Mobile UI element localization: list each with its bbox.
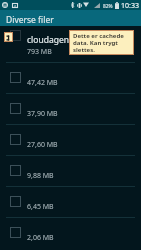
staticText: 793 MB [27, 47, 52, 57]
staticText: 37,90 MB [27, 109, 58, 119]
button[interactable]: Dette er cachede data. Kan trygt slettes… [70, 31, 133, 54]
staticText: 9,88 MB [27, 171, 54, 181]
staticText: 6,45 MB [27, 202, 54, 212]
button[interactable]: 2,06 MB [0, 218, 141, 248]
button[interactable]: 37,90 MB [0, 94, 141, 124]
other: Sync [2, 2, 8, 8]
staticText: cloudagent [27, 34, 73, 46]
staticText: Diverse filer [6, 14, 54, 26]
staticText: 10:33 [121, 1, 139, 11]
staticText: 27,60 MB [27, 140, 58, 150]
staticText: 2,06 MB [27, 233, 54, 243]
staticText: 82% [103, 3, 113, 10]
staticText: 47,42 MB [27, 78, 58, 88]
button[interactable]: cloudagent [0, 26, 141, 62]
other: Screenshot [12, 3, 18, 8]
button[interactable]: 27,60 MB [0, 125, 141, 155]
staticText: Dette er cachede data. Kan trygt slettes… [73, 32, 133, 54]
button[interactable]: 6,45 MB [0, 187, 141, 217]
button[interactable]: Info [5, 33, 12, 41]
button[interactable]: Diverse filer [0, 10, 141, 26]
button[interactable]: 9,88 MB [0, 156, 141, 186]
button[interactable]: 47,42 MB [0, 63, 141, 93]
